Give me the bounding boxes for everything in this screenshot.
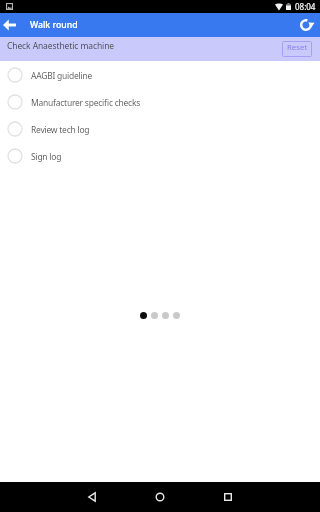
staticText: Manufacturer specific checks <box>31 97 141 109</box>
button[interactable]: Manufacturer specific checks <box>0 88 320 115</box>
button[interactable]: Reset <box>282 41 312 57</box>
staticText: Reset <box>287 42 308 53</box>
button[interactable]: Back <box>76 482 108 512</box>
staticText: Walk round <box>30 19 78 31</box>
button[interactable]: Recents <box>212 482 244 512</box>
button[interactable]: AAGBI guideline <box>0 61 320 88</box>
staticText: Sign log <box>31 151 62 163</box>
button[interactable]: Sign log <box>0 142 320 169</box>
button[interactable]: Back <box>0 13 20 37</box>
staticText: Review tech log <box>31 124 90 136</box>
staticText: 08:04 <box>295 1 316 12</box>
button[interactable]: Review tech log <box>0 115 320 142</box>
button[interactable]: Refresh <box>292 13 318 37</box>
staticText: Check Anaesthetic machine <box>7 40 114 52</box>
button[interactable]: Home <box>144 482 176 512</box>
staticText: AAGBI guideline <box>31 70 93 82</box>
